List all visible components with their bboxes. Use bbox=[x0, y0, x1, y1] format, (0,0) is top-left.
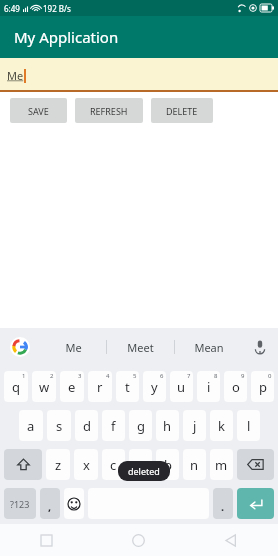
button[interactable]: g bbox=[129, 410, 152, 441]
staticText: My Application bbox=[14, 27, 119, 47]
staticText: j bbox=[193, 417, 197, 435]
staticText: DELETE bbox=[166, 105, 198, 117]
staticText: ?123 bbox=[10, 498, 30, 510]
staticText: i bbox=[207, 378, 211, 396]
button[interactable]: SAVE bbox=[10, 98, 67, 123]
staticText: SAVE bbox=[28, 105, 49, 117]
staticText: 3 bbox=[78, 372, 82, 380]
button[interactable]: m bbox=[210, 449, 233, 480]
staticText: l bbox=[247, 417, 251, 435]
button[interactable]: Backspace bbox=[237, 449, 274, 480]
staticText: 6 bbox=[160, 372, 164, 380]
staticText: v bbox=[137, 456, 144, 474]
staticText: x bbox=[83, 456, 90, 474]
staticText: 1 bbox=[22, 372, 26, 380]
button[interactable]: Me bbox=[40, 328, 106, 366]
staticText: s bbox=[56, 417, 63, 435]
button[interactable]: s bbox=[47, 410, 71, 441]
button[interactable]: a bbox=[19, 410, 43, 441]
button[interactable]: Shift bbox=[4, 449, 42, 480]
staticText: o bbox=[232, 378, 240, 396]
staticText: 5 bbox=[133, 372, 137, 380]
staticText: Me bbox=[65, 340, 82, 355]
staticText: 4 bbox=[106, 372, 110, 380]
staticText: d bbox=[83, 417, 91, 435]
button[interactable]: i bbox=[197, 371, 220, 402]
staticText: y bbox=[151, 378, 158, 396]
staticText: w bbox=[39, 378, 50, 396]
staticText: deleted bbox=[128, 465, 160, 477]
staticText: k bbox=[218, 417, 225, 435]
button[interactable]: Recents bbox=[0, 524, 92, 556]
staticText: c bbox=[110, 456, 117, 474]
button[interactable]: v bbox=[129, 449, 152, 480]
button[interactable]: q bbox=[4, 371, 28, 402]
staticText: u bbox=[177, 378, 186, 396]
button[interactable]: REFRESH bbox=[75, 98, 143, 123]
button[interactable]: d bbox=[75, 410, 98, 441]
staticText: a bbox=[27, 417, 35, 435]
button[interactable]: ?123 bbox=[4, 488, 36, 519]
staticText: 7 bbox=[187, 372, 191, 380]
staticText: h bbox=[163, 417, 172, 435]
button[interactable]: r bbox=[88, 371, 112, 402]
staticText: z bbox=[55, 456, 62, 474]
staticText: Meet bbox=[127, 340, 154, 355]
staticText: g bbox=[137, 417, 145, 435]
button[interactable]: b bbox=[156, 449, 179, 480]
staticText: b bbox=[164, 456, 172, 474]
staticText: 2 bbox=[50, 372, 54, 380]
button[interactable]: Meet bbox=[107, 328, 174, 366]
staticText: Me bbox=[7, 68, 24, 83]
button[interactable]: k bbox=[210, 410, 233, 441]
staticText: r bbox=[97, 378, 103, 396]
button[interactable]: . bbox=[213, 488, 233, 519]
button[interactable]: f bbox=[102, 410, 125, 441]
button[interactable]: l bbox=[237, 410, 260, 441]
button[interactable]: y bbox=[143, 371, 166, 402]
staticText: 6:49 bbox=[4, 3, 20, 14]
button[interactable]: Back bbox=[185, 524, 278, 556]
button[interactable]: p bbox=[251, 371, 274, 402]
button[interactable]: n bbox=[183, 449, 206, 480]
button[interactable]: t bbox=[116, 371, 139, 402]
staticText: REFRESH bbox=[90, 105, 128, 117]
staticText: t bbox=[125, 378, 130, 396]
button[interactable]: Emoji bbox=[64, 488, 84, 519]
button[interactable]: Home bbox=[92, 524, 185, 556]
button[interactable]: x bbox=[74, 449, 98, 480]
button[interactable]: u bbox=[170, 371, 193, 402]
staticText: . bbox=[221, 499, 225, 514]
button[interactable]: z bbox=[46, 449, 70, 480]
button[interactable]: Google bbox=[0, 328, 40, 366]
button[interactable]: , bbox=[40, 488, 60, 519]
button[interactable]: j bbox=[183, 410, 206, 441]
staticText: f bbox=[111, 417, 116, 435]
button[interactable]: c bbox=[102, 449, 125, 480]
staticText: 8 bbox=[214, 372, 218, 380]
staticText: 9 bbox=[241, 372, 245, 380]
button[interactable]: h bbox=[156, 410, 179, 441]
staticText: p bbox=[259, 378, 267, 396]
button[interactable]: Voice input bbox=[242, 328, 278, 366]
button[interactable]: o bbox=[224, 371, 247, 402]
staticText: 192 B/s bbox=[43, 3, 71, 14]
staticText: 0 bbox=[268, 372, 272, 380]
staticText: e bbox=[68, 378, 76, 396]
staticText: q bbox=[12, 378, 20, 396]
staticText: Mean bbox=[194, 340, 224, 355]
button[interactable]: Mean bbox=[175, 328, 242, 366]
button[interactable]: w bbox=[32, 371, 56, 402]
button[interactable]: e bbox=[60, 371, 84, 402]
staticText: n bbox=[190, 456, 199, 474]
staticText: , bbox=[48, 499, 52, 514]
button[interactable]: DELETE bbox=[151, 98, 213, 123]
button[interactable]: Enter bbox=[237, 488, 274, 519]
staticText: m bbox=[215, 456, 228, 474]
